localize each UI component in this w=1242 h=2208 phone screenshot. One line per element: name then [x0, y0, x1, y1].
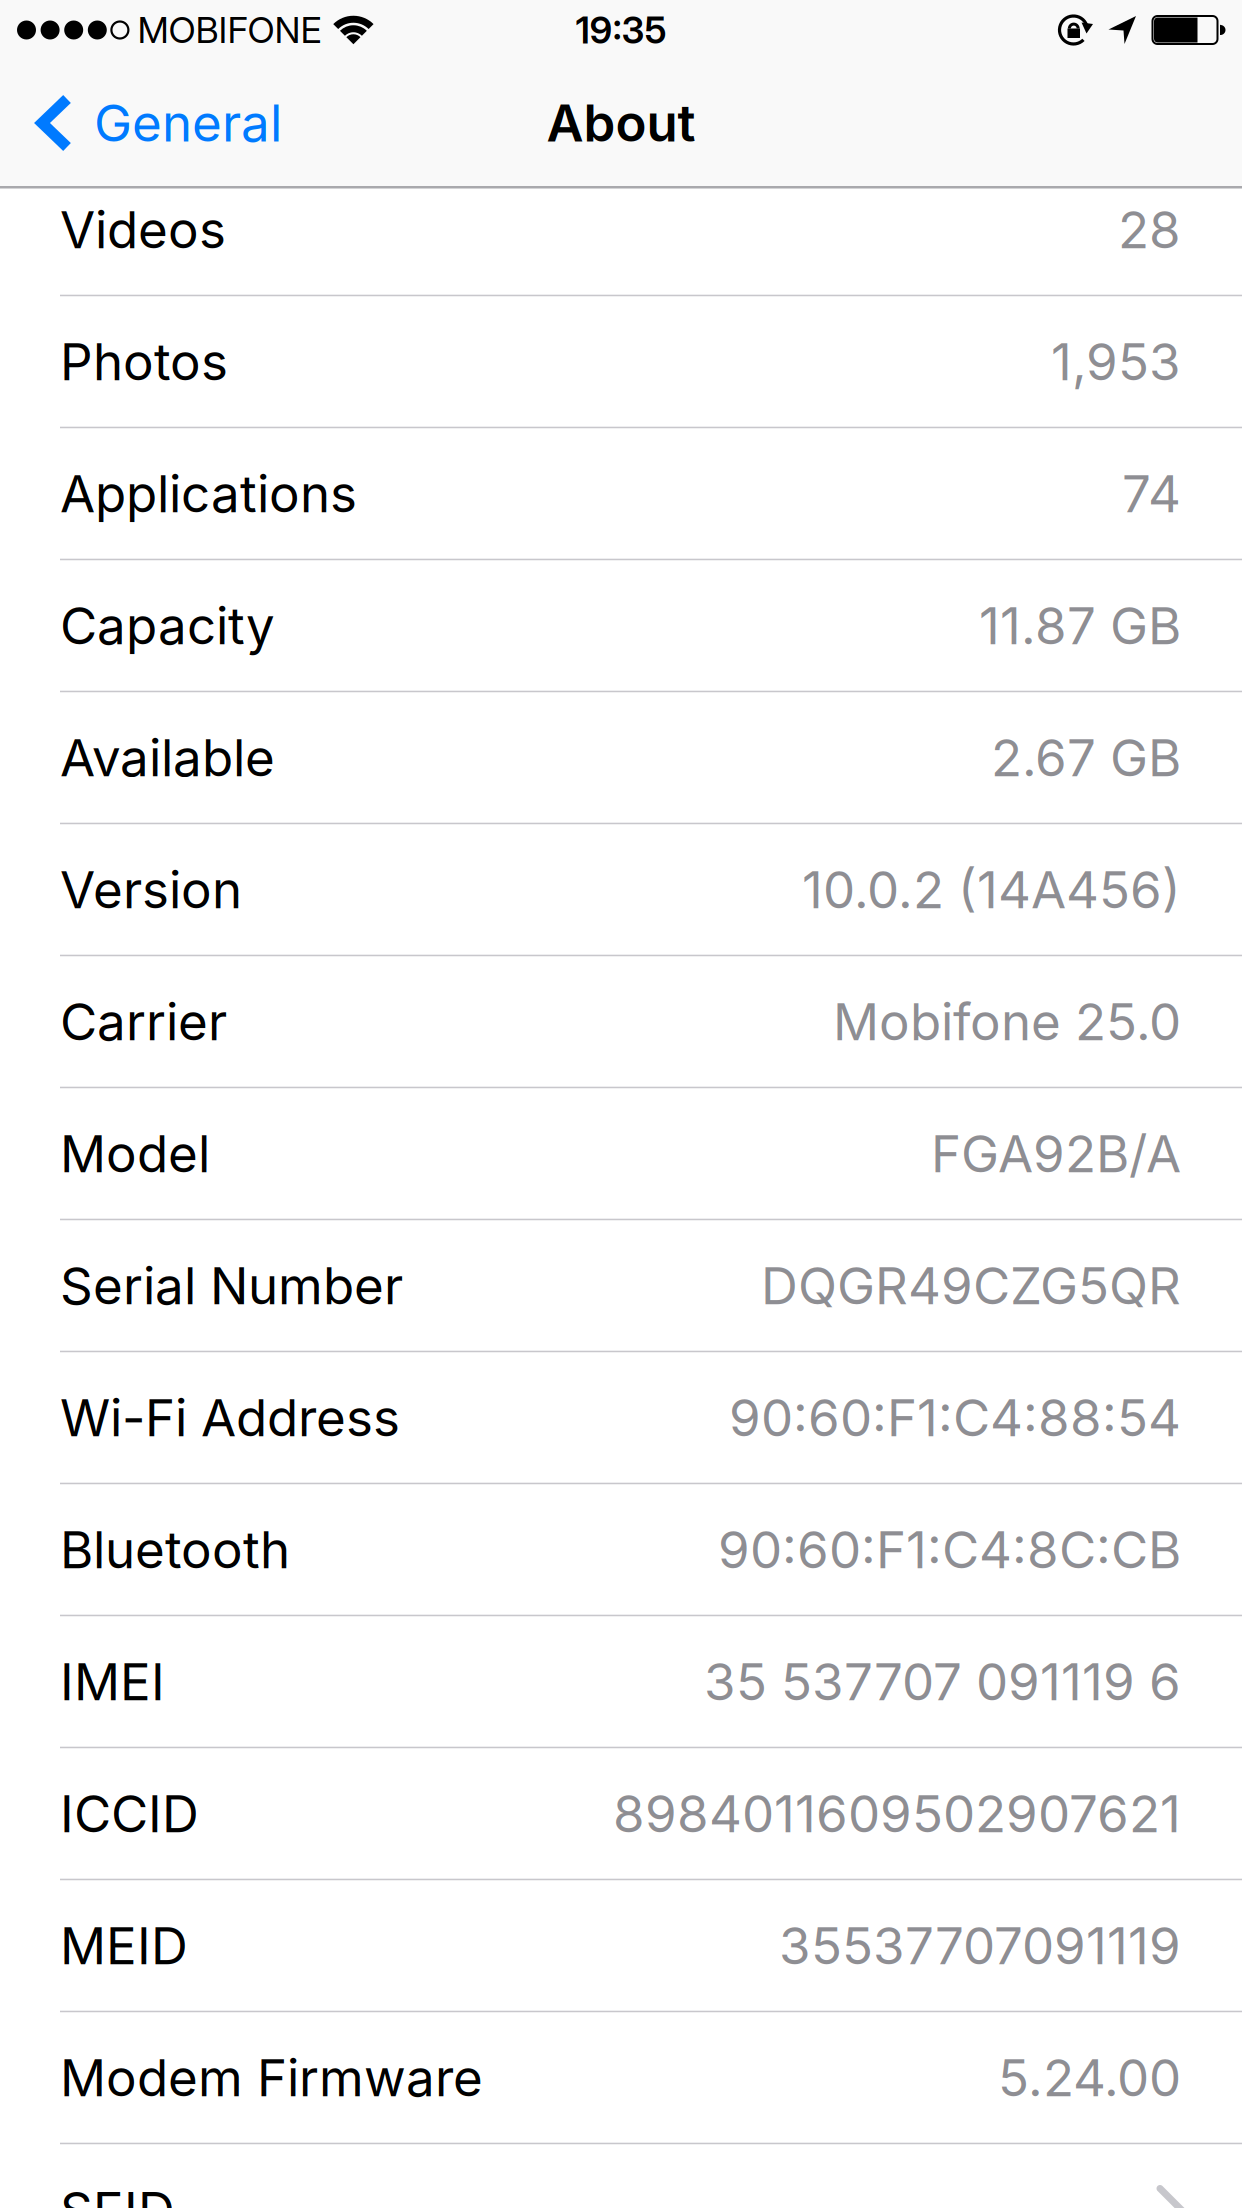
staticText: Mobifone 25.0 [833, 991, 1181, 1052]
staticText: Model [60, 1123, 210, 1184]
staticText: 35 537707 091119 6 [704, 1651, 1181, 1712]
staticText: Photos [60, 331, 228, 392]
staticText: Available [60, 727, 275, 788]
staticText: 8984011609502907621 [613, 1783, 1181, 1844]
staticText: 5.24.00 [998, 2047, 1181, 2108]
staticText: 1,953 [1051, 331, 1181, 392]
staticText: MEID [60, 1915, 188, 1976]
staticText: 2.67 GB [991, 727, 1181, 788]
staticText: Applications [60, 463, 357, 524]
staticText: ICCID [60, 1783, 199, 1844]
staticText: Modem Firmware [60, 2047, 483, 2108]
staticText: 90:60:F1:C4:88:54 [729, 1387, 1181, 1448]
staticText: 10.0.2 (14A456) [802, 859, 1181, 920]
staticText: Capacity [60, 595, 275, 656]
staticText: 28 [1118, 199, 1181, 260]
staticText: About [546, 92, 695, 154]
staticText: 35537707091119 [779, 1915, 1181, 1976]
staticText: Version [60, 859, 242, 920]
staticText: 90:60:F1:C4:8C:CB [718, 1519, 1181, 1580]
staticText: Bluetooth [60, 1519, 290, 1580]
button[interactable]: SEID [0, 2144, 1242, 2208]
staticText: Videos [60, 199, 226, 260]
staticText: Wi-Fi Address [60, 1387, 400, 1448]
staticText: 11.87 GB [979, 595, 1181, 656]
staticText: 74 [1122, 463, 1181, 524]
staticText: General [94, 92, 282, 154]
staticText: Carrier [60, 991, 227, 1052]
staticText: 19:35 [575, 8, 666, 52]
staticText: Serial Number [60, 1255, 403, 1316]
staticText: FGA92B/A [931, 1123, 1181, 1184]
button[interactable]: General [36, 92, 282, 154]
staticText: SEID [60, 2180, 175, 2208]
staticText: DQGR49CZG5QR [761, 1255, 1181, 1316]
staticText: MOBIFONE [137, 8, 321, 52]
staticText: IMEI [60, 1651, 165, 1712]
